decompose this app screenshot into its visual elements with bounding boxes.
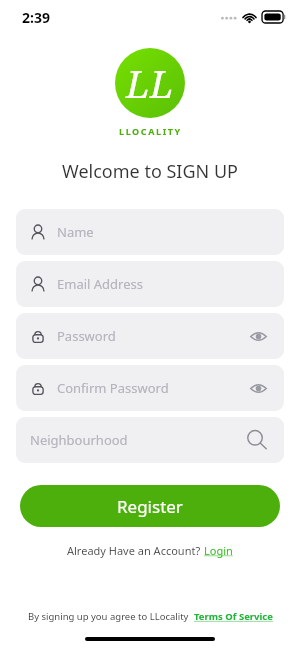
staticText: 2:39 bbox=[22, 8, 50, 27]
staticText: LL bbox=[126, 57, 174, 109]
button[interactable]: Password bbox=[16, 313, 284, 359]
button[interactable]: Register bbox=[20, 485, 280, 527]
staticText: Register bbox=[117, 495, 183, 518]
button[interactable]: Neighbourhood bbox=[16, 417, 284, 463]
button[interactable]: Email Address bbox=[16, 261, 284, 307]
staticText: Confirm Password bbox=[57, 379, 246, 397]
button[interactable]: Terms Of Service bbox=[194, 610, 273, 623]
staticText: Login bbox=[204, 543, 233, 558]
staticText: Password bbox=[57, 327, 246, 345]
staticText: Neighbourhood bbox=[30, 431, 244, 449]
staticText: Terms Of Service bbox=[194, 610, 273, 623]
staticText: LLOCALITY bbox=[119, 125, 182, 137]
button[interactable]: Search bbox=[244, 427, 270, 453]
button[interactable]: Show password bbox=[246, 324, 270, 348]
button[interactable]: Name bbox=[16, 209, 284, 255]
button[interactable]: Show password bbox=[246, 376, 270, 400]
staticText: Already Have an Account? bbox=[67, 543, 204, 558]
staticText: By signing up you agree to LLocality bbox=[28, 610, 194, 623]
button[interactable]: Confirm Password bbox=[16, 365, 284, 411]
staticText: Email Address bbox=[57, 275, 270, 293]
staticText: Welcome to SIGN UP bbox=[0, 159, 300, 184]
staticText: Name bbox=[57, 223, 270, 241]
button[interactable]: Login bbox=[204, 543, 233, 558]
